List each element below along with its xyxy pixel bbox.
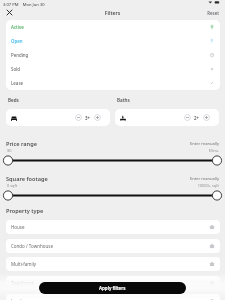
staticText: Land — [11, 298, 22, 300]
staticText: Condo / Townhouse — [11, 243, 53, 249]
staticText: Property type — [6, 207, 44, 215]
button[interactable]: Condo / Townhouse — [6, 239, 220, 253]
staticText: Apply filters — [99, 285, 126, 291]
staticText: Beds — [8, 97, 19, 103]
button[interactable]: House — [6, 220, 220, 234]
staticText: Open — [11, 38, 23, 44]
button[interactable]: Townhome — [6, 276, 220, 290]
button[interactable]: Multi-family — [6, 257, 220, 271]
staticText: 0 sqft — [7, 183, 18, 188]
staticText: 2+ — [194, 115, 200, 121]
staticText: 3+ — [85, 115, 91, 121]
staticText: Sold — [11, 66, 21, 72]
button[interactable]: Apply filters — [39, 282, 186, 294]
staticText: Price range — [6, 140, 37, 148]
button[interactable]: Close — [3, 6, 16, 19]
button[interactable]: Increase — [94, 114, 101, 121]
button[interactable]: Decrease — [184, 114, 191, 121]
staticText: Baths — [117, 97, 130, 103]
button[interactable]: Increase — [203, 114, 210, 121]
staticText: Multi-family — [11, 261, 37, 267]
button[interactable]: Pending — [6, 48, 220, 62]
button[interactable]: Enter manually — [150, 141, 219, 147]
staticText: Reset — [198, 10, 219, 16]
button[interactable]: Decrease — [75, 114, 82, 121]
staticText: $5m+ — [150, 148, 219, 153]
button[interactable]: Enter manually — [150, 176, 219, 182]
button[interactable]: Reset — [198, 10, 219, 16]
button[interactable]: Active — [6, 20, 220, 34]
staticText: Pending — [11, 52, 29, 58]
staticText: Square footage — [6, 175, 48, 183]
staticText: Townhome — [11, 280, 35, 286]
staticText: Filters — [0, 9, 225, 16]
staticText: Lease — [11, 80, 24, 86]
staticText: 10000+ sqft — [150, 183, 219, 188]
button[interactable]: Open — [6, 34, 220, 48]
staticText: House — [11, 224, 25, 230]
staticText: $0 — [7, 148, 12, 153]
staticText: 3:07 PM Mon Jun 30 — [3, 2, 45, 8]
staticText: Enter manually — [150, 176, 219, 182]
staticText: Active — [11, 24, 24, 30]
button[interactable]: Sold — [6, 62, 220, 76]
button[interactable]: Lease — [6, 76, 220, 90]
staticText: Enter manually — [150, 141, 219, 147]
